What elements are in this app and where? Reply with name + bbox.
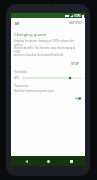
staticText: Threshold — [14, 70, 27, 74]
button[interactable]: Recent apps — [63, 156, 79, 166]
staticText: lifetime and life. This function stop th… — [14, 46, 82, 53]
button[interactable]: BATTERY — [68, 20, 83, 26]
staticText: and turn it back at the desired threshol… — [14, 53, 64, 57]
staticText: BATTERY — [69, 21, 82, 25]
button[interactable]: Back — [18, 156, 34, 166]
staticText: STOP — [71, 61, 80, 66]
button[interactable]: Home — [40, 156, 56, 166]
button[interactable]: STOP — [69, 60, 82, 67]
button[interactable]: Start function at system boot — [74, 96, 82, 101]
staticText: 100% — [74, 14, 81, 18]
staticText: Charging guard — [14, 31, 46, 37]
button[interactable]: Open navigation drawer — [13, 20, 20, 27]
button[interactable]: Start the function at system boot — [11, 89, 85, 93]
staticText: Start the function at system boot — [14, 89, 82, 93]
staticText: Keeping the device charging at 100% redu… — [14, 39, 82, 46]
staticText: 80% — [14, 76, 20, 80]
staticText: Persistence — [14, 84, 29, 88]
button[interactable]: 80% — [14, 76, 82, 80]
